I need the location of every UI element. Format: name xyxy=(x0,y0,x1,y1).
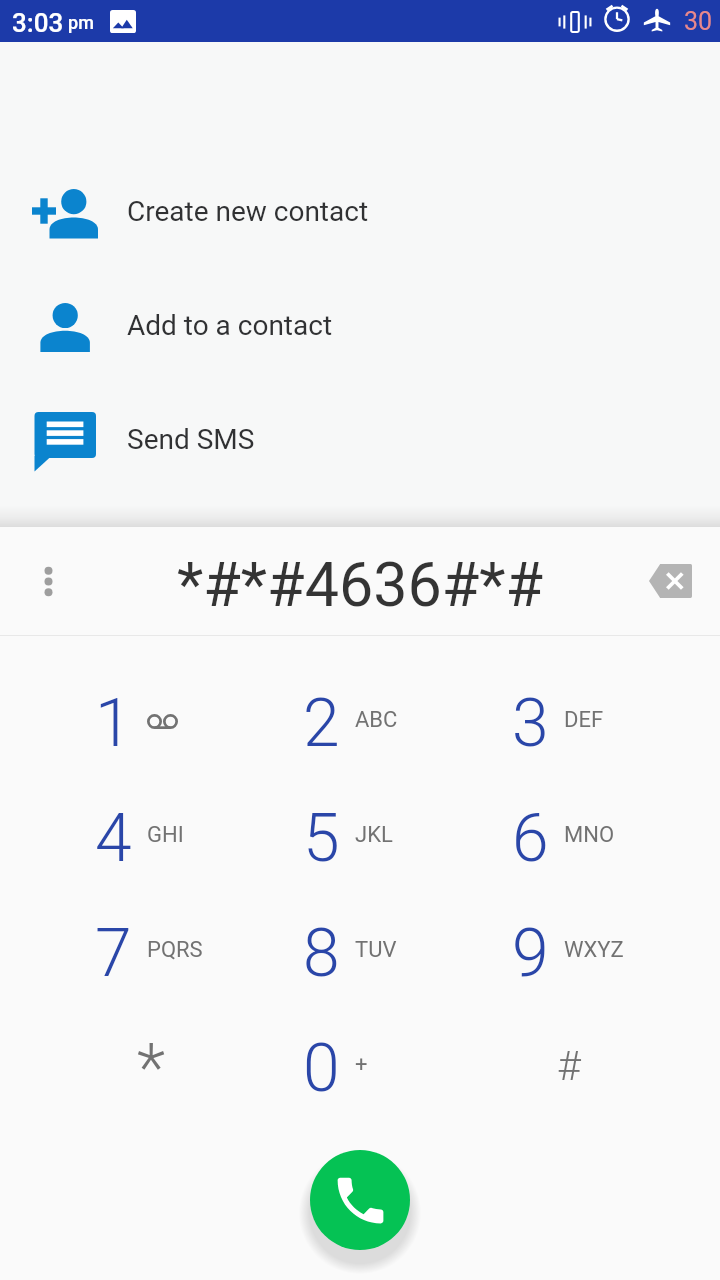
staticText: Add to a contact xyxy=(127,309,333,342)
staticText: 0 xyxy=(303,1030,340,1107)
button[interactable]: 0 xyxy=(255,1011,464,1126)
staticText: Send SMS xyxy=(127,423,255,456)
button[interactable]: Call xyxy=(310,1150,410,1250)
button[interactable]: 3 xyxy=(464,666,673,781)
button[interactable]: 7 xyxy=(47,896,255,1011)
staticText: 8 xyxy=(303,915,340,992)
button[interactable]: Backspace xyxy=(636,550,704,618)
staticText: 7 xyxy=(95,915,132,992)
staticText: 9 xyxy=(512,915,549,992)
staticText: TUV xyxy=(355,937,397,963)
button[interactable]: 8 xyxy=(255,896,464,1011)
button[interactable]: 4 xyxy=(47,781,255,896)
button[interactable]: 9 xyxy=(464,896,673,1011)
staticText: * xyxy=(137,1030,166,1107)
staticText: 3:03 xyxy=(12,8,64,38)
button[interactable]: More options xyxy=(14,550,82,618)
button[interactable]: 1 xyxy=(47,666,255,781)
button[interactable]: # xyxy=(464,1011,673,1126)
button[interactable]: 5 xyxy=(255,781,464,896)
staticText: # xyxy=(557,1042,581,1090)
button[interactable]: Create new contact xyxy=(0,156,720,270)
staticText: GHI xyxy=(147,822,184,848)
staticText: pm xyxy=(68,12,94,33)
staticText: DEF xyxy=(564,707,604,733)
button[interactable]: * xyxy=(47,1011,255,1126)
staticText: JKL xyxy=(355,822,393,848)
staticText: 6 xyxy=(512,800,549,877)
staticText: 4 xyxy=(95,800,132,877)
staticText: 5 xyxy=(303,800,340,877)
staticText: 3 xyxy=(512,685,549,762)
staticText: 30 xyxy=(684,7,713,36)
staticText: Create new contact xyxy=(127,195,369,228)
button[interactable]: 2 xyxy=(255,666,464,781)
staticText: MNO xyxy=(564,822,615,848)
staticText: WXYZ xyxy=(564,937,624,963)
button[interactable]: 6 xyxy=(464,781,673,896)
staticText: 1 xyxy=(95,685,132,762)
button[interactable]: Send SMS xyxy=(0,384,720,498)
staticText: + xyxy=(355,1052,368,1078)
staticText: PQRS xyxy=(147,937,203,963)
staticText: 2 xyxy=(303,685,340,762)
button[interactable]: Add to a contact xyxy=(0,270,720,384)
staticText: *#*#4636#*# xyxy=(177,549,544,620)
staticText: ABC xyxy=(355,707,398,733)
